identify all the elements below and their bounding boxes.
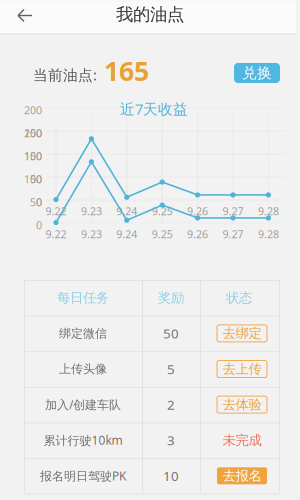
staticText: 9.27 bbox=[222, 227, 243, 241]
staticText: 3 bbox=[167, 431, 175, 449]
staticText: 累计行驶10km bbox=[43, 432, 122, 448]
staticText: 我的油点 bbox=[116, 4, 184, 25]
staticText: 9.24 bbox=[116, 204, 137, 218]
staticText: 9.22 bbox=[45, 227, 66, 241]
staticText: 2 bbox=[167, 396, 175, 413]
staticText: 当前油点: bbox=[33, 65, 97, 84]
staticText: 200 bbox=[24, 103, 42, 117]
button[interactable]: 去体验 bbox=[217, 396, 267, 413]
button[interactable]: 兑换 bbox=[234, 63, 280, 83]
staticText: 奖励 bbox=[158, 290, 184, 306]
staticText: 报名明日驾驶PK bbox=[40, 468, 126, 484]
staticText: 9.23 bbox=[81, 204, 102, 218]
button[interactable]: 返回 bbox=[0, 0, 40, 33]
staticText: 状态 bbox=[226, 290, 252, 306]
staticText: 9.24 bbox=[116, 227, 137, 241]
staticText: 50 bbox=[30, 172, 42, 186]
staticText: 9.25 bbox=[152, 227, 173, 241]
staticText: 每日任务 bbox=[57, 290, 109, 306]
staticText: 0 bbox=[36, 195, 42, 209]
staticText: 50 bbox=[30, 195, 42, 209]
staticText: 去上传 bbox=[222, 361, 261, 377]
staticText: 9.23 bbox=[81, 227, 102, 241]
staticText: 9.27 bbox=[222, 204, 243, 218]
staticText: 兑换 bbox=[242, 64, 272, 82]
staticText: 0 bbox=[36, 218, 42, 232]
button[interactable]: 去报名 bbox=[217, 467, 267, 484]
button[interactable]: 去绑定 bbox=[217, 325, 267, 342]
button[interactable]: 去上传 bbox=[217, 360, 267, 377]
staticText: 9.28 bbox=[258, 227, 279, 241]
staticText: 9.22 bbox=[45, 204, 66, 218]
staticText: 加入/创建车队 bbox=[45, 397, 121, 412]
staticText: 100 bbox=[24, 149, 42, 163]
staticText: 100 bbox=[24, 172, 42, 186]
staticText: 去体验 bbox=[222, 396, 261, 413]
staticText: 上传头像 bbox=[59, 362, 107, 376]
staticText: 150 bbox=[24, 149, 42, 163]
staticText: 9.25 bbox=[152, 204, 173, 218]
staticText: 9.26 bbox=[187, 204, 208, 218]
staticText: 未完成 bbox=[222, 432, 261, 448]
staticText: 50 bbox=[163, 324, 179, 342]
staticText: 近7天收益 bbox=[120, 99, 188, 118]
staticText: 5 bbox=[167, 360, 175, 378]
staticText: 165 bbox=[104, 53, 149, 88]
staticText: 200 bbox=[24, 126, 42, 140]
staticText: 9.28 bbox=[258, 204, 279, 218]
staticText: 10 bbox=[163, 467, 179, 485]
staticText: 去绑定 bbox=[222, 325, 261, 342]
staticText: 150 bbox=[24, 126, 42, 140]
staticText: 绑定微信 bbox=[59, 326, 107, 341]
staticText: 9.26 bbox=[187, 227, 208, 241]
staticText: 去报名 bbox=[222, 468, 261, 484]
